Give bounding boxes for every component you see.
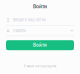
- staticText: Войти: [33, 4, 47, 9]
- button[interactable]: Пароль: [6, 26, 74, 36]
- staticText: Пароль: [13, 28, 26, 33]
- staticText: Введите ваш логин: [13, 18, 46, 22]
- staticText: У меня нет аккаунта: [23, 64, 56, 68]
- button[interactable]: Введите ваш логин: [6, 15, 74, 26]
- staticText: Войти: [33, 43, 47, 48]
- button[interactable]: Войти: [6, 40, 74, 50]
- button[interactable]: У меня нет аккаунта: [23, 64, 56, 68]
